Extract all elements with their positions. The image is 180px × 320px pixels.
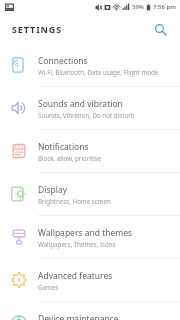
staticText: Brightness, Home screen (38, 197, 111, 205)
staticText: Sounds, Vibration, Do not disturb (38, 111, 135, 119)
button[interactable]: Device maintenance (0, 302, 180, 320)
staticText: Advanced features (38, 270, 113, 282)
button[interactable]: Advanced features (0, 259, 180, 302)
staticText: 59% (132, 3, 144, 11)
staticText: Device maintenance (38, 313, 119, 320)
staticText: Games (38, 283, 59, 291)
button[interactable]: Wallpapers and themes (0, 216, 180, 259)
button[interactable]: Connections (0, 44, 180, 87)
button[interactable]: Notifications (0, 130, 180, 173)
staticText: Connections (38, 55, 88, 67)
button[interactable]: Search (148, 17, 172, 41)
staticText: Display (38, 184, 67, 196)
button[interactable]: Display (0, 173, 180, 216)
staticText: Notifications (38, 141, 89, 153)
staticText: Sounds and vibration (38, 98, 123, 110)
staticText: Wi-Fi, Bluetooth, Data usage, Flight mod… (38, 68, 159, 76)
staticText: Wallpapers and themes (38, 227, 133, 239)
staticText: SETTINGS (12, 23, 63, 35)
button[interactable]: Sounds and vibration (0, 87, 180, 130)
staticText: 7:56 pm (153, 3, 176, 11)
staticText: Wallpapers, Themes, Icons (38, 240, 116, 248)
staticText: Block, allow, prioritise (38, 154, 102, 162)
